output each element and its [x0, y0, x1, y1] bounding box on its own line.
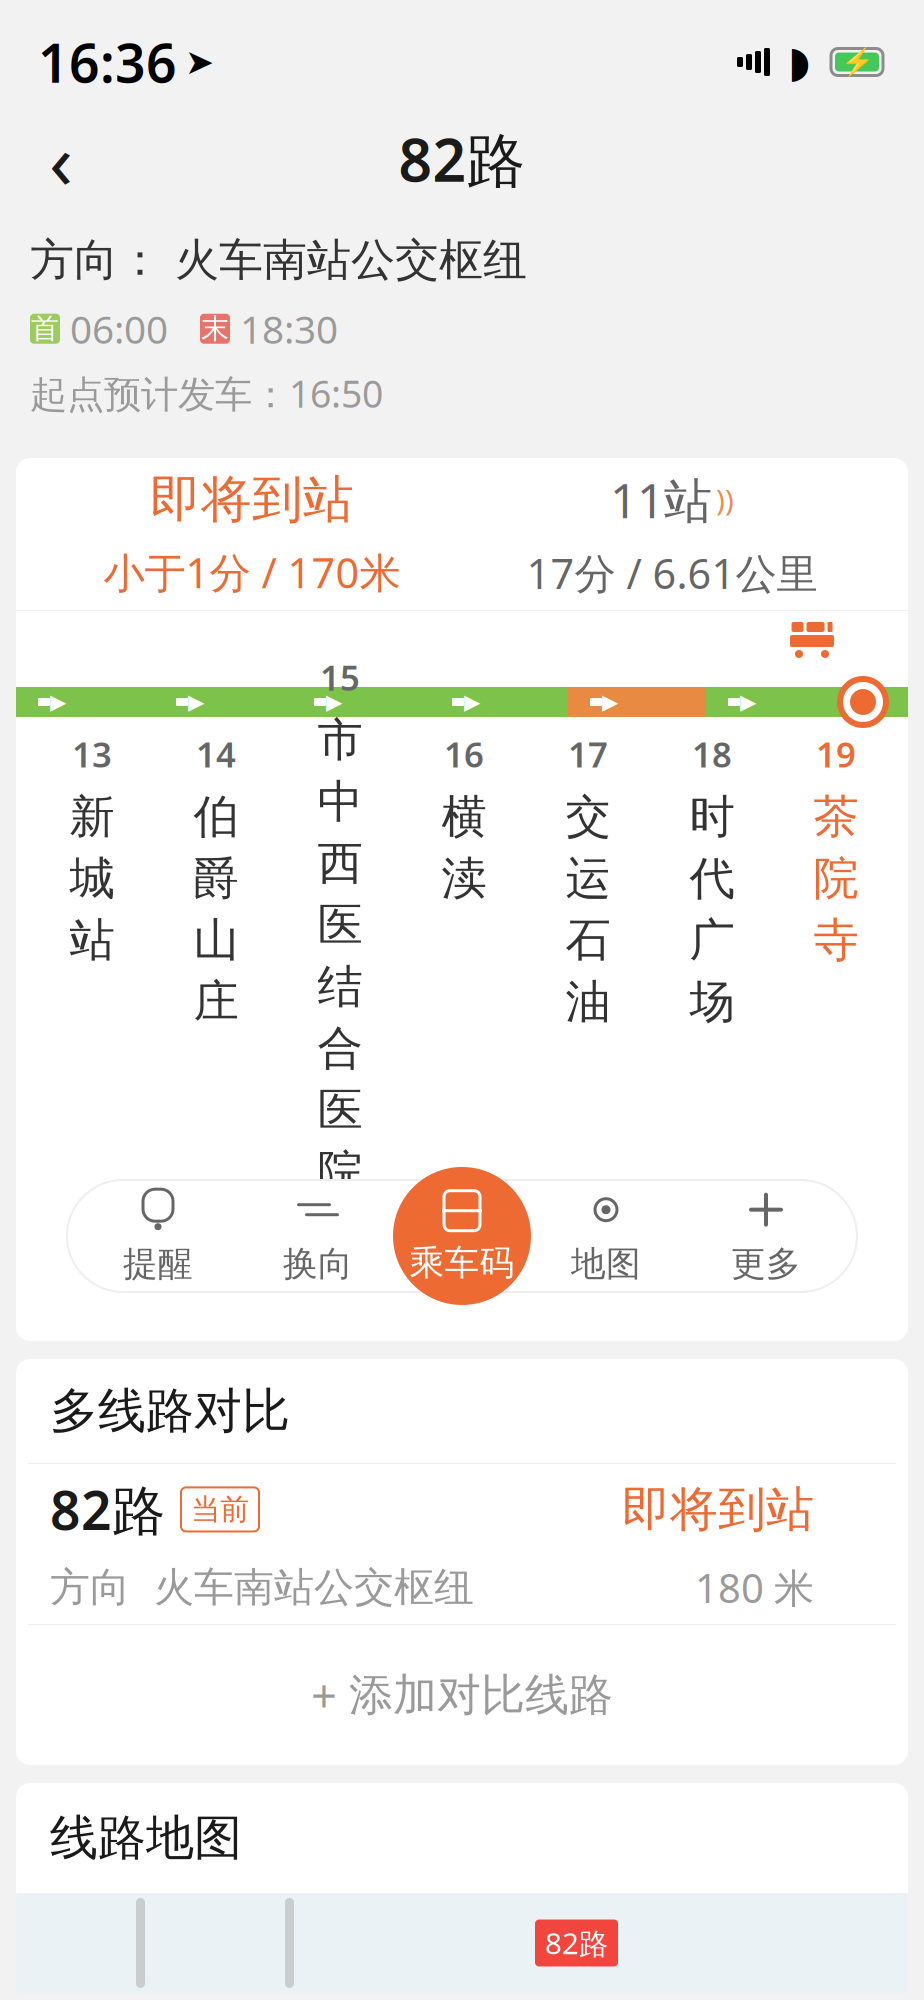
staticText: 运 [565, 851, 610, 906]
button[interactable]: 地图 [526, 1186, 686, 1286]
staticText: 方向 火车南站公交枢纽 [50, 1563, 474, 1612]
staticText: 15 [320, 654, 360, 700]
staticText: ‹ [49, 108, 73, 210]
staticText: 渎 [441, 851, 486, 906]
staticText: ◗ [788, 38, 810, 86]
staticText: 17分 / 6.61公里 [526, 545, 817, 600]
staticText: 医 [317, 897, 362, 953]
staticText: 19 [816, 731, 856, 777]
staticText: 起点预计发车：16:50 [30, 368, 383, 418]
staticText: 13 [72, 731, 112, 777]
staticText: 合 [317, 1021, 362, 1076]
staticText: )) [716, 480, 734, 519]
staticText: 82路 [398, 120, 525, 198]
button[interactable]: 15 [278, 654, 402, 1208]
staticText: 82路 [545, 1923, 608, 1962]
staticText: 即将到站 [622, 1480, 814, 1539]
staticText: 火车南站公交枢纽 [162, 233, 527, 287]
staticText: 伯 [193, 789, 238, 845]
button[interactable]: 返回 [18, 116, 104, 202]
staticText: 18 [692, 731, 732, 777]
button[interactable]: 82路 [16, 1464, 908, 1624]
button[interactable]: 14 [154, 731, 278, 1131]
staticText: 添加对比线路 [349, 1668, 613, 1722]
staticText: 首 [31, 311, 59, 346]
staticText: 18:30 [240, 303, 338, 354]
staticText: 16:36 [38, 27, 177, 97]
staticText: 小于1分 / 170米 [103, 545, 400, 600]
staticText: 乘车码 [409, 1242, 514, 1284]
staticText: 换向 [283, 1243, 353, 1285]
staticText: 末 [201, 311, 229, 346]
staticText: 14 [196, 731, 236, 777]
staticText: 院 [813, 851, 858, 906]
staticText: 提醒 [123, 1243, 193, 1285]
staticText: 山 [193, 912, 238, 968]
staticText: 市 [317, 712, 362, 768]
staticText: 茶 [813, 789, 858, 845]
staticText: 180 米 [695, 1561, 814, 1614]
staticText: 代 [689, 851, 734, 906]
button[interactable]: + [16, 1625, 908, 1765]
staticText: 油 [565, 974, 610, 1030]
staticText: 17 [568, 731, 608, 777]
staticText: ▶ [188, 690, 204, 714]
staticText: 新 [69, 789, 114, 845]
staticText: 横 [441, 789, 486, 845]
staticText: ▶ [326, 690, 342, 714]
staticText: 更多 [731, 1243, 801, 1285]
staticText: 当前 [191, 1491, 249, 1527]
button[interactable]: 16 [402, 731, 526, 1131]
staticText: 石 [565, 912, 610, 968]
staticText: 医 [317, 1082, 362, 1138]
button[interactable]: 更多 [686, 1186, 846, 1286]
staticText: 交 [565, 789, 610, 845]
staticText: 广 [689, 912, 734, 968]
staticText: ▶ [602, 690, 618, 714]
staticText: 多线路对比 [50, 1381, 290, 1440]
staticText: 结 [317, 959, 362, 1015]
staticText: 线路地图 [50, 1808, 242, 1867]
staticText: 06:00 [70, 303, 168, 354]
staticText: 82路 [50, 1474, 165, 1545]
staticText: 方向： [30, 233, 162, 287]
staticText: 场 [689, 974, 734, 1030]
staticText: 西 [317, 836, 362, 891]
staticText: 院 [317, 1144, 362, 1200]
button[interactable]: 18 [650, 731, 774, 1131]
staticText: 即将到站 [150, 468, 354, 531]
button[interactable]: 乘车码 [393, 1167, 531, 1305]
staticText: 庄 [193, 974, 238, 1030]
button[interactable]: 13 [30, 731, 154, 1131]
staticText: 时 [689, 789, 734, 845]
staticText: 站 [69, 912, 114, 968]
staticText: 中 [317, 774, 362, 830]
button[interactable]: 提醒 [78, 1186, 238, 1286]
staticText: 寺 [813, 912, 858, 968]
button[interactable]: 换向 [238, 1186, 398, 1286]
button[interactable]: 19 [774, 731, 898, 1131]
staticText: 11站 [610, 468, 712, 531]
staticText: 地图 [571, 1243, 641, 1285]
staticText: ➤ [185, 42, 214, 82]
staticText: ⚡ [840, 47, 873, 77]
staticText: 爵 [193, 851, 238, 906]
staticText: 城 [69, 851, 114, 906]
staticText: + [311, 1665, 337, 1725]
staticText: ▶ [740, 690, 756, 714]
staticText: ▶ [50, 690, 66, 714]
staticText: 16 [444, 731, 484, 777]
button[interactable]: 17 [526, 731, 650, 1131]
staticText: ▶ [464, 690, 480, 714]
